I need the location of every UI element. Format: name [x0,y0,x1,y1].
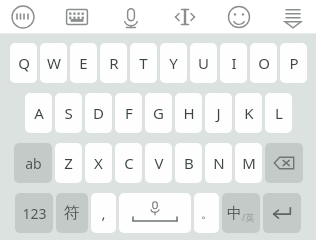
button[interactable]: N [205,143,232,183]
staticText: E [79,53,88,73]
button[interactable]: I [220,43,247,83]
button[interactable]: 123 [15,193,53,233]
staticText: T [139,53,148,73]
staticText: , [101,203,106,223]
staticText: B [184,153,194,173]
button[interactable]: Enter [263,193,301,233]
staticText: N [213,153,225,173]
staticText: Y [169,53,178,73]
button[interactable]: R [100,43,127,83]
staticText: K [244,103,254,123]
staticText: D [93,103,104,123]
staticText: S [64,103,73,123]
button[interactable]: T [130,43,157,83]
staticText: 中 [227,204,242,223]
button[interactable]: J [205,93,232,133]
staticText: G [153,103,164,123]
staticText: A [34,103,44,123]
staticText: J [216,103,221,123]
staticText: Q [18,53,30,73]
button[interactable]: Q [10,43,37,83]
staticText: H [183,103,195,123]
staticText: U [198,53,209,73]
button[interactable]: Emoji [222,0,256,34]
button[interactable]: Input method logo [6,0,40,34]
button[interactable]: B [175,143,202,183]
button[interactable]: E [70,43,97,83]
staticText: /英 [242,211,255,223]
staticText: L [275,103,283,123]
button[interactable]: O [250,43,277,83]
button[interactable]: F [115,93,142,133]
staticText: M [242,153,256,173]
staticText: R [109,53,119,73]
button[interactable]: 。 [194,193,219,233]
button[interactable]: M [235,143,262,183]
button[interactable]: C [115,143,142,183]
button[interactable]: S [55,93,82,133]
button[interactable]: K [235,93,262,133]
button[interactable]: Hide keyboard [276,0,310,34]
button[interactable]: U [190,43,217,83]
staticText: O [258,53,270,73]
staticText: X [94,153,103,173]
staticText: W [47,53,61,73]
button[interactable]: D [85,93,112,133]
button[interactable]: V [145,143,172,183]
button[interactable]: L [265,93,292,133]
staticText: I [231,53,237,73]
button[interactable]: Switch Chinese English [222,193,260,233]
button[interactable]: 符 [56,193,88,233]
button[interactable]: X [85,143,112,183]
staticText: V [154,153,164,173]
button[interactable]: W [40,43,67,83]
button[interactable]: Voice input [114,0,148,34]
button[interactable]: Backspace [265,143,303,183]
button[interactable]: Z [55,143,82,183]
staticText: 123 [22,204,47,223]
staticText: P [289,53,299,73]
button[interactable]: Y [160,43,187,83]
button[interactable]: Keyboard layout [60,0,94,34]
staticText: 符 [64,203,80,223]
staticText: 。 [201,206,213,221]
button[interactable]: G [145,93,172,133]
staticText: Z [64,153,73,173]
button[interactable]: H [175,93,202,133]
button[interactable]: A [25,93,52,133]
button[interactable]: P [280,43,307,83]
button[interactable]: , [91,193,116,233]
staticText: F [125,103,133,123]
button[interactable]: ab [14,143,52,183]
button[interactable]: Space [119,193,191,233]
staticText: C [124,153,134,173]
staticText: ab [25,154,42,173]
button[interactable]: Move cursor [168,0,202,34]
